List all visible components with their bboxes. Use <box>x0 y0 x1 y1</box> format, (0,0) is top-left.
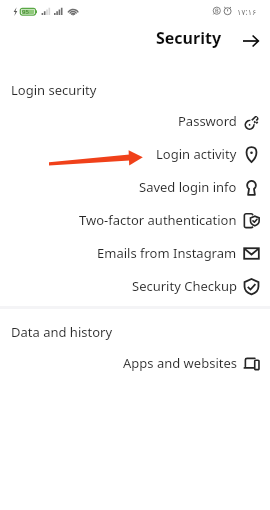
staticText: ۱۷:۱۶ <box>237 6 257 17</box>
button[interactable]: Two-factor authentication <box>0 203 270 236</box>
staticText: Login activity <box>156 145 237 163</box>
button[interactable]: Emails from Instagram <box>0 236 270 269</box>
button[interactable]: Password <box>0 104 270 137</box>
staticText: Security Checkup <box>132 277 237 295</box>
button[interactable]: Login activity <box>0 137 270 170</box>
button[interactable]: Saved login info <box>0 170 270 203</box>
staticText: Data and history <box>11 323 113 341</box>
staticText: Apps and websites <box>123 354 237 372</box>
button[interactable]: Apps and websites <box>0 346 270 379</box>
staticText: Login security <box>11 81 97 99</box>
staticText: 95 <box>22 8 29 16</box>
button[interactable]: Back <box>240 28 262 50</box>
staticText: Emails from Instagram <box>97 244 237 262</box>
staticText: Saved login info <box>139 178 237 196</box>
staticText: Security <box>156 27 222 49</box>
staticText: Two-factor authentication <box>79 211 237 229</box>
staticText: Password <box>178 112 237 130</box>
button[interactable]: Security Checkup <box>0 269 270 302</box>
